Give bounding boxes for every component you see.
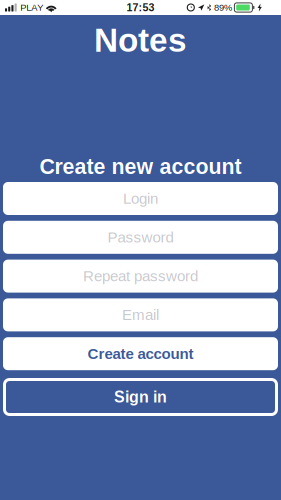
staticText: Email xyxy=(122,306,159,323)
staticText: Create new account xyxy=(39,155,241,178)
staticText: Password xyxy=(107,229,173,246)
staticText: Sign in xyxy=(114,388,167,406)
staticText: 17:53 xyxy=(126,1,154,13)
staticText: Login xyxy=(123,190,158,207)
button[interactable]: Login xyxy=(3,182,278,215)
button[interactable]: Create account xyxy=(3,337,278,370)
staticText: Notes xyxy=(94,21,187,59)
button[interactable]: Password xyxy=(3,221,278,254)
staticText: Repeat password xyxy=(83,268,198,284)
button[interactable]: Sign in xyxy=(3,376,278,416)
staticText: Create account xyxy=(87,345,193,362)
staticText: 89% xyxy=(214,2,232,13)
button[interactable]: Repeat password xyxy=(3,260,278,293)
staticText: PLAY xyxy=(20,2,43,13)
button[interactable]: Email xyxy=(3,298,278,331)
